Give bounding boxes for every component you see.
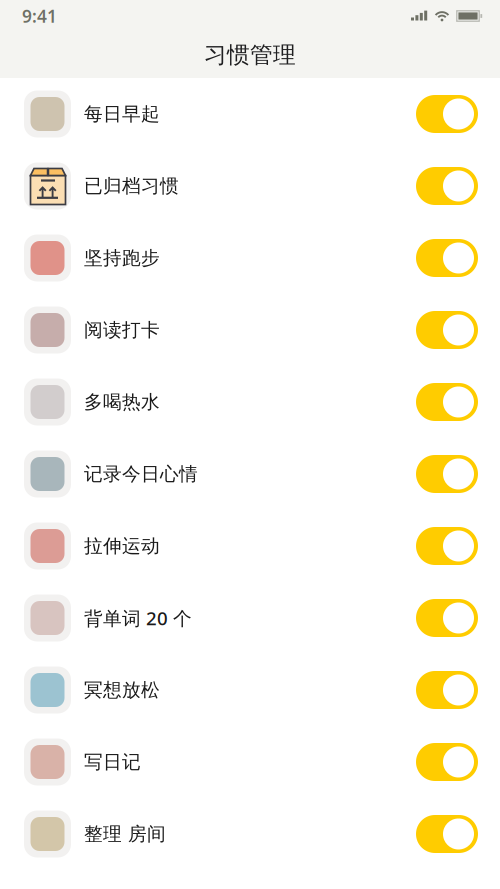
staticText: 背单词 20 个	[84, 606, 192, 630]
staticText: 记录今日心情	[84, 462, 198, 485]
button[interactable]: 背单词 20 个	[0, 582, 500, 654]
button[interactable]: 坚持跑步	[0, 222, 500, 294]
staticText: 已归档习惯	[84, 174, 179, 197]
button[interactable]: 整理 房间	[0, 798, 500, 870]
staticText: 整理 房间	[84, 822, 166, 845]
staticText: 多喝热水	[84, 390, 160, 413]
button[interactable]: 每日早起	[0, 78, 500, 150]
button[interactable]: 拉伸运动	[0, 510, 500, 582]
button[interactable]: 写日记	[0, 726, 500, 798]
button[interactable]: 记录今日心情	[0, 438, 500, 510]
staticText: 9:41	[22, 4, 57, 27]
button[interactable]: 阅读打卡	[0, 294, 500, 366]
staticText: 坚持跑步	[84, 246, 160, 269]
button[interactable]: 多喝热水	[0, 366, 500, 438]
staticText: 习惯管理	[204, 41, 296, 69]
staticText: 拉伸运动	[84, 534, 160, 557]
staticText: 冥想放松	[84, 678, 160, 701]
button[interactable]: 已归档习惯	[0, 150, 500, 222]
button[interactable]: 冥想放松	[0, 654, 500, 726]
staticText: 每日早起	[84, 102, 160, 125]
staticText: 阅读打卡	[84, 318, 160, 341]
staticText: 写日记	[84, 750, 141, 773]
